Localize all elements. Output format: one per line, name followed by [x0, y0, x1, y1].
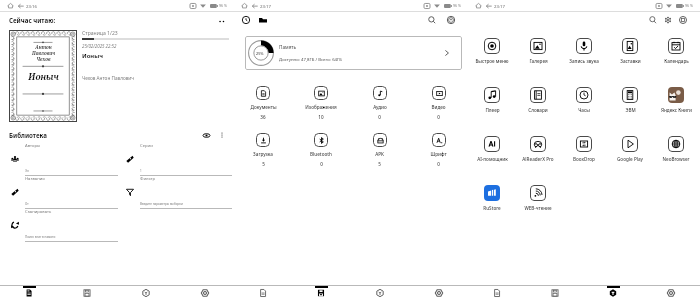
staticText: AI-помощник	[477, 156, 508, 162]
staticText: Изображения	[305, 104, 337, 110]
button[interactable]: Settings	[677, 14, 689, 26]
button[interactable]: Search	[426, 14, 438, 26]
staticText: Библиотека	[9, 131, 47, 139]
staticText: Названия	[25, 176, 45, 182]
staticText: 25/02/2025 22:52	[82, 43, 117, 49]
button[interactable]: Календарь	[653, 38, 699, 64]
button[interactable]: Названия	[10, 187, 20, 197]
button[interactable]: AI-помощник	[469, 136, 515, 162]
staticText: Видео	[431, 104, 446, 110]
button[interactable]: Плеер	[469, 87, 515, 113]
button[interactable]: Book cover Ионыч	[9, 30, 77, 122]
button[interactable]: Шрифт	[409, 133, 468, 167]
button[interactable]: RuStore	[469, 185, 515, 211]
button[interactable]: WEB-чтение	[515, 185, 561, 211]
staticText: Антон	[35, 44, 52, 50]
staticText: 23:16	[26, 3, 37, 9]
button[interactable]: Запись звука	[561, 38, 607, 64]
staticText: Аудио	[373, 104, 387, 110]
button[interactable]: Settings	[175, 286, 234, 301]
button[interactable]: Recent	[240, 14, 252, 26]
staticText: 10	[318, 114, 324, 120]
button[interactable]: Часы	[561, 87, 607, 113]
staticText: Заставки	[620, 58, 641, 64]
button[interactable]: Folder	[257, 14, 269, 26]
button[interactable]: Apps	[116, 286, 175, 301]
button[interactable]: Видео	[409, 86, 468, 120]
button[interactable]: Документы	[234, 86, 292, 120]
button[interactable]: Загрузка	[234, 133, 292, 167]
button[interactable]: Серии	[125, 154, 135, 164]
staticText: Быстрое меню	[475, 58, 509, 64]
staticText: Ионыч	[28, 71, 59, 83]
button[interactable]: Галерея	[515, 38, 561, 64]
staticText: Эл	[25, 169, 29, 173]
button[interactable]: Изображения	[292, 86, 350, 120]
staticText: Память	[279, 44, 297, 50]
staticText: Авторы	[25, 143, 41, 149]
staticText: RuStore	[483, 205, 501, 211]
staticText: 23:17	[260, 3, 271, 9]
button[interactable]: Заставки	[607, 38, 653, 64]
button[interactable]: Яндекс Книги	[653, 87, 699, 113]
button[interactable]: Storage	[58, 286, 116, 301]
button[interactable]: Storage	[526, 286, 584, 301]
button[interactable]: Apps	[584, 286, 642, 301]
staticText: Чехов Антон Павлович	[82, 75, 135, 81]
staticText: 96 %	[685, 3, 694, 8]
button[interactable]: Library	[0, 286, 58, 301]
staticText: Ионыч	[82, 52, 103, 60]
staticText: Google Play	[617, 156, 643, 162]
staticText: 0	[437, 161, 440, 167]
button[interactable]: Авторы	[10, 154, 20, 164]
staticText: BooxDrop	[573, 156, 595, 162]
button[interactable]: Library	[468, 286, 526, 301]
staticText: Словари	[528, 107, 548, 113]
button[interactable]: Быстрое меню	[469, 38, 515, 64]
staticText: От	[25, 202, 29, 206]
staticText: Сканировать	[25, 209, 52, 215]
button[interactable]: Apps	[350, 286, 409, 301]
button[interactable]: More options	[216, 129, 228, 141]
staticText: Доступно: 47,8ГБ / Всего: 64ГБ	[279, 56, 342, 62]
staticText: Введите параметры выборки	[140, 202, 183, 206]
button[interactable]: AlReaderX Pro	[515, 136, 561, 162]
button[interactable]: BooxDrop	[561, 136, 607, 162]
button[interactable]: Settings	[642, 286, 700, 301]
staticText: ЭВМ	[625, 107, 636, 113]
button[interactable]: Сканировать	[10, 220, 20, 230]
staticText: APK	[375, 151, 384, 157]
button[interactable]: Preview	[200, 129, 212, 141]
staticText: NeoBrowser	[662, 156, 690, 162]
staticText: 5	[262, 161, 265, 167]
button[interactable]: Фильтр	[125, 187, 135, 197]
staticText: Галерея	[529, 58, 548, 64]
button[interactable]: 25%	[245, 36, 462, 70]
staticText: 0	[437, 114, 440, 120]
button[interactable]: Storage	[292, 286, 350, 301]
staticText: 0	[320, 161, 323, 167]
staticText: Павлович	[32, 50, 55, 56]
button[interactable]: Library	[234, 286, 292, 301]
button[interactable]: Layout	[662, 14, 674, 26]
staticText: 96 %	[219, 3, 228, 8]
staticText: Документы	[250, 104, 277, 110]
staticText: AlReaderX Pro	[522, 156, 554, 162]
button[interactable]: APK	[350, 133, 409, 167]
staticText: Запись звука	[569, 58, 599, 64]
staticText: WEB-чтение	[524, 205, 552, 211]
staticText: 36	[260, 114, 266, 120]
staticText: Шрифт	[430, 151, 447, 157]
button[interactable]: ЭВМ	[607, 87, 653, 113]
button[interactable]: Bluetooth	[292, 133, 350, 167]
button[interactable]: Словари	[515, 87, 561, 113]
button[interactable]: Settings	[409, 286, 468, 301]
button[interactable]: Google Play	[607, 136, 653, 162]
button[interactable]: Settings	[445, 14, 457, 26]
staticText: Часы	[578, 107, 590, 113]
button[interactable]: NeoBrowser	[653, 136, 699, 162]
button[interactable]: Search	[647, 14, 659, 26]
button[interactable]: Аудио	[350, 86, 409, 120]
button[interactable]: Now reading options	[214, 14, 228, 28]
staticText: 1	[140, 169, 142, 173]
